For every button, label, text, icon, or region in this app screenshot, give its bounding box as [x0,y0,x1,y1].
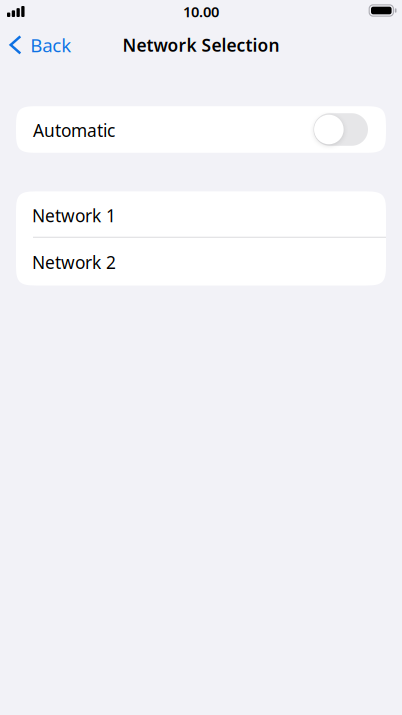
button[interactable]: Network 2 [16,238,386,285]
staticText: Network 1 [32,204,116,227]
button[interactable]: Automatic network selection, off [16,106,386,153]
staticText: 10.00 [183,2,219,21]
staticText: Automatic [33,119,115,142]
staticText: Network Selection [122,33,279,56]
staticText: Back [30,33,71,57]
button[interactable]: Network 1 [16,191,386,237]
staticText: Network 2 [32,251,116,274]
button[interactable]: Back [0,23,92,67]
